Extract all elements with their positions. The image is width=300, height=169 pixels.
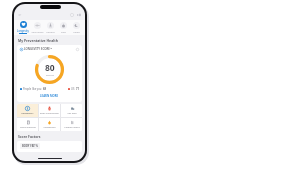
staticText: Blood Pressure (20, 126, 36, 129)
staticText: POINTS (46, 74, 54, 77)
staticText: Sleep (73, 30, 80, 33)
button[interactable]: LEARN MORE (39, 93, 60, 99)
button[interactable]: Menu (18, 13, 22, 17)
staticText: US (71, 87, 75, 91)
button[interactable]: Profile (70, 13, 74, 17)
button[interactable]: LONGEVITY (17, 104, 38, 117)
button[interactable]: Cell Data (61, 104, 82, 117)
button[interactable]: Information (76, 48, 79, 51)
staticText: Cell Data (67, 112, 77, 115)
staticText: My Preventative Health (18, 38, 58, 43)
button[interactable]: Blood Pressure (17, 118, 38, 131)
staticText: LONGEVITY SCORE™ (24, 47, 53, 51)
staticText: Metabolism (43, 126, 56, 129)
staticText: LONGEVITY (21, 112, 34, 115)
button[interactable]: Notifications (77, 13, 81, 17)
staticText: BODY FAT % (22, 144, 38, 148)
staticText: People like you (23, 87, 42, 91)
staticText: Score Factors (18, 134, 41, 139)
staticText: Vital Signs (31, 30, 44, 33)
button[interactable]: LONGEVITY SCORE™ (17, 45, 82, 102)
staticText: 80 (45, 62, 55, 74)
button[interactable]: Cardiac Fitness (61, 118, 82, 131)
button[interactable]: Sleep (70, 20, 83, 35)
staticText: Longevity (17, 29, 29, 32)
staticText: LEARN MORE (40, 94, 59, 98)
button[interactable]: Metabolism (39, 118, 60, 131)
staticText: 68 (43, 87, 46, 91)
button[interactable]: Diet (57, 20, 70, 35)
staticText: Body Composition (40, 112, 59, 115)
staticText: Fitness (46, 30, 55, 33)
staticText: 71 (76, 87, 79, 91)
staticText: Cardiac Fitness (64, 126, 80, 129)
button[interactable]: Vital Signs (30, 20, 44, 35)
staticText: Diet (61, 30, 66, 33)
button[interactable]: Fitness (44, 20, 57, 35)
button[interactable]: Body Composition (39, 104, 60, 117)
button[interactable]: BODY FAT % (17, 141, 82, 152)
button[interactable]: Longevity (16, 20, 30, 35)
